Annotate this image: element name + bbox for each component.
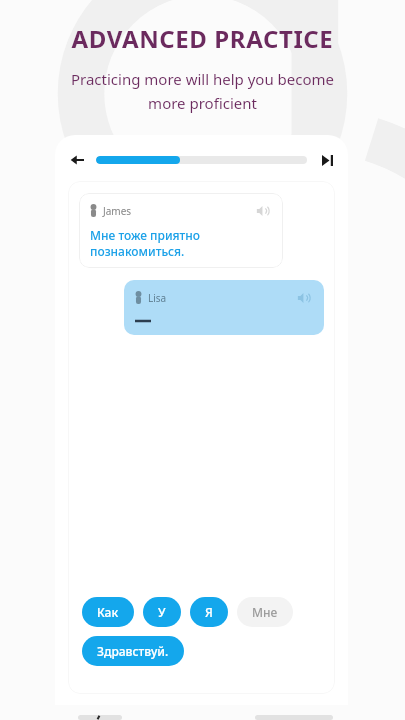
button[interactable]: Как	[82, 597, 134, 627]
staticText: Я	[205, 604, 213, 620]
button[interactable]: Play audio	[295, 289, 313, 307]
staticText: У	[158, 604, 166, 620]
button[interactable]: У	[143, 597, 181, 627]
button[interactable]: Здравствуй.	[82, 636, 184, 666]
button[interactable]: Microphone	[78, 715, 122, 720]
staticText: ADVANCED PRACTICE	[0, 22, 405, 55]
staticText: Lisa	[148, 291, 167, 305]
staticText: Мне тоже приятно познакомиться.	[90, 227, 201, 259]
button[interactable]: Lisa	[124, 280, 324, 335]
button[interactable]: Back	[66, 149, 88, 171]
staticText: James	[103, 204, 132, 218]
staticText: Мне	[252, 604, 278, 620]
staticText: Practicing more will help you become mor…	[20, 69, 385, 113]
button[interactable]: James	[79, 193, 283, 268]
button[interactable]: Play audio	[254, 202, 272, 220]
staticText: Как	[97, 604, 119, 620]
staticText: Здравствуй.	[97, 643, 169, 659]
button[interactable]: Skip	[317, 150, 337, 170]
button[interactable]: Я	[190, 597, 228, 627]
button[interactable]: Мне	[237, 597, 293, 627]
